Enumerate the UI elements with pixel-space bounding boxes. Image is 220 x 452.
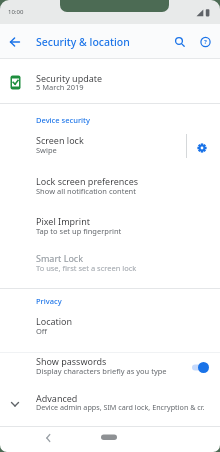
- button[interactable]: [170, 33, 188, 51]
- button[interactable]: [0, 128, 186, 158]
- button[interactable]: [0, 308, 220, 344]
- staticText: Lock screen preferences: [36, 175, 139, 187]
- button[interactable]: [0, 62, 220, 103]
- button[interactable]: [0, 168, 220, 204]
- button[interactable]: [186, 128, 220, 158]
- button[interactable]: [196, 33, 215, 51]
- staticText: To use, first set a screen lock: [36, 263, 137, 273]
- button[interactable]: [0, 352, 220, 382]
- staticText: Privacy: [36, 296, 62, 306]
- staticText: Pixel Imprint: [36, 215, 90, 227]
- button[interactable]: [97, 428, 121, 446]
- staticText: Screen lock: [36, 134, 84, 146]
- staticText: 5 March 2019: [36, 82, 84, 92]
- staticText: Advanced: [36, 392, 78, 404]
- staticText: ?: [204, 38, 207, 46]
- staticText: Location: [36, 315, 73, 327]
- staticText: 10:00: [8, 8, 24, 16]
- button[interactable]: [0, 208, 220, 244]
- button[interactable]: [0, 386, 220, 420]
- staticText: Smart Lock: [36, 252, 83, 264]
- staticText: Off: [36, 326, 48, 336]
- staticText: Show passwords: [36, 355, 107, 367]
- button[interactable]: [0, 246, 220, 282]
- staticText: Security & location: [36, 35, 130, 49]
- staticText: Display characters briefly as you type: [36, 366, 167, 376]
- staticText: Tap to set up fingerprint: [36, 226, 122, 236]
- staticText: Security update: [36, 72, 103, 84]
- staticText: Device security: [36, 115, 90, 125]
- staticText: Swipe: [36, 145, 57, 155]
- button[interactable]: [6, 33, 24, 51]
- staticText: Show all notification content: [36, 186, 136, 196]
- staticText: Device admin apps, SIM card lock, Encryp…: [36, 402, 205, 412]
- button[interactable]: [40, 428, 58, 446]
